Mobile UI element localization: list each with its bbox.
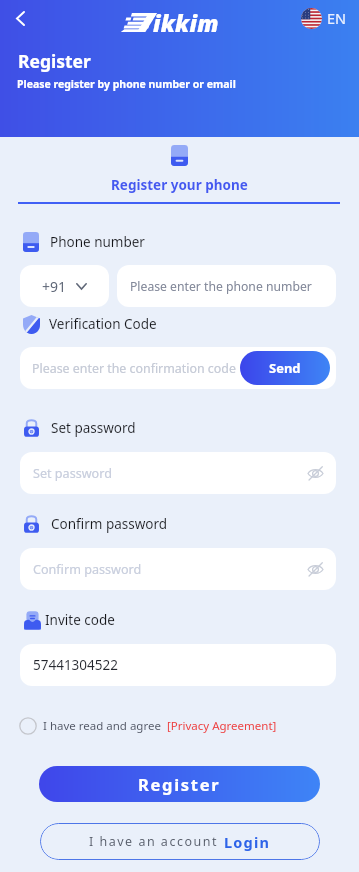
button[interactable]: Send	[240, 351, 330, 385]
staticText: Send	[269, 359, 301, 377]
staticText: Verification Code	[49, 315, 157, 333]
staticText: Please register by phone number or email	[17, 77, 236, 91]
button[interactable]: Back	[4, 2, 36, 34]
button[interactable]: I have an account	[40, 823, 320, 860]
staticText: Set password	[33, 465, 112, 482]
staticText: Invite code	[45, 611, 115, 629]
button[interactable]: 57441304522	[20, 644, 336, 686]
staticText: +91	[42, 277, 67, 296]
staticText: Confirm password	[33, 561, 142, 578]
staticText: Register	[138, 773, 221, 795]
staticText: Register	[18, 49, 91, 73]
button[interactable]: Register	[39, 766, 320, 802]
staticText: Register your phone	[111, 176, 248, 194]
button[interactable]: I have read and agree	[19, 714, 277, 738]
staticText: 57441304522	[33, 656, 118, 674]
button[interactable]: Please enter the confirmation code	[20, 347, 336, 389]
staticText: EN	[327, 8, 347, 28]
staticText: I have an account	[89, 833, 218, 850]
button[interactable]: Please enter the phone number	[117, 265, 336, 307]
button[interactable]: Toggle password visibility	[304, 558, 326, 580]
button[interactable]: EN	[301, 7, 347, 29]
button[interactable]: Set password	[20, 452, 336, 494]
button[interactable]: Confirm password	[20, 548, 336, 590]
staticText: [Privacy Agreement]	[167, 718, 277, 734]
staticText: Please enter the phone number	[130, 278, 312, 295]
staticText: Phone number	[50, 233, 145, 251]
staticText: Confirm password	[51, 515, 168, 533]
staticText: ikkim	[153, 7, 219, 38]
button[interactable]: Toggle password visibility	[304, 462, 326, 484]
button[interactable]: +91	[20, 265, 109, 307]
staticText: Set password	[51, 419, 136, 437]
staticText: Login	[224, 832, 271, 852]
staticText: I have read and agree	[43, 718, 161, 734]
staticText: Please enter the confirmation code	[32, 360, 236, 377]
